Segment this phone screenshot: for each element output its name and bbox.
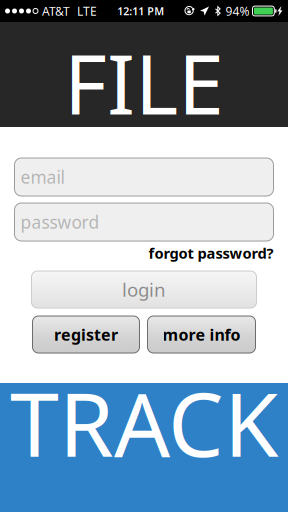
staticText: 12:11 PM <box>117 4 164 18</box>
button[interactable]: login <box>31 271 256 308</box>
button[interactable]: forgot password? <box>14 244 273 262</box>
staticText: email <box>20 165 64 188</box>
staticText: register <box>54 324 118 345</box>
staticText: more info <box>162 324 240 345</box>
staticText: FILE <box>64 28 224 137</box>
staticText: password <box>20 210 99 233</box>
staticText: forgot password? <box>148 243 273 263</box>
staticText: AT&T <box>42 3 70 19</box>
button[interactable]: more info <box>147 316 255 353</box>
staticText: 94% <box>225 3 249 19</box>
staticText: TRACK <box>10 364 278 481</box>
staticText: login <box>122 277 166 302</box>
button[interactable]: register <box>32 316 139 353</box>
staticText: LTE <box>77 3 97 19</box>
